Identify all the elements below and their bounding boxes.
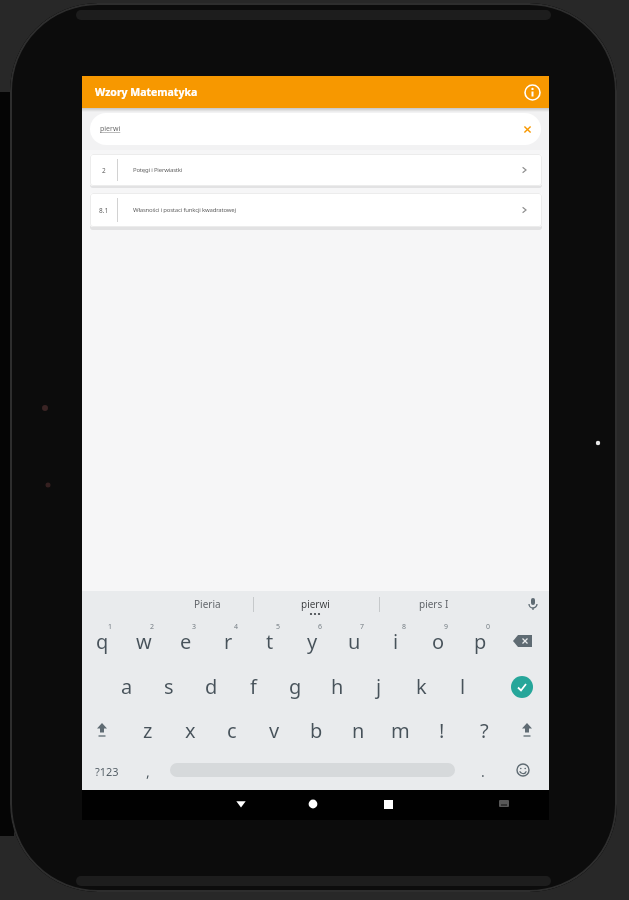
staticText: r xyxy=(224,628,233,655)
staticText: 7 xyxy=(360,622,365,632)
staticText: Wzory Matematyka xyxy=(95,85,198,99)
button[interactable]: u xyxy=(337,625,371,657)
staticText: ?123 xyxy=(95,764,119,779)
button[interactable]: q xyxy=(85,625,119,657)
staticText: piers I xyxy=(419,597,449,611)
button[interactable] xyxy=(516,763,530,777)
staticText: t xyxy=(266,628,274,655)
staticText: s xyxy=(164,673,174,700)
button[interactable]: 2 xyxy=(90,154,542,186)
staticText: , xyxy=(146,762,150,781)
button[interactable]: . xyxy=(466,755,500,787)
button[interactable] xyxy=(511,676,533,698)
staticText: p xyxy=(474,628,487,655)
staticText: ! xyxy=(439,717,445,744)
button[interactable] xyxy=(498,799,510,809)
staticText: a xyxy=(121,673,133,700)
staticText: z xyxy=(143,717,153,744)
staticText: 8 xyxy=(402,622,407,632)
button[interactable]: f xyxy=(236,670,270,702)
staticText: n xyxy=(352,717,365,744)
button[interactable]: r xyxy=(211,625,245,657)
button[interactable]: m xyxy=(383,714,417,746)
button[interactable]: Pieria xyxy=(147,590,267,618)
staticText: l xyxy=(460,673,466,700)
button[interactable]: piers I xyxy=(374,590,494,618)
staticText: 8.1 xyxy=(99,206,109,215)
staticText: g xyxy=(289,673,302,700)
staticText: Pieria xyxy=(194,597,221,611)
button[interactable] xyxy=(526,597,540,611)
staticText: 6 xyxy=(318,622,323,632)
button[interactable]: ?123 xyxy=(47,757,167,785)
staticText: x xyxy=(185,717,196,744)
button[interactable]: t xyxy=(253,625,287,657)
staticText: 3 xyxy=(192,622,197,632)
staticText: ? xyxy=(480,717,489,744)
button[interactable]: j xyxy=(362,670,396,702)
button[interactable] xyxy=(233,796,249,812)
staticText: 2 xyxy=(102,166,106,175)
button[interactable] xyxy=(94,721,110,739)
staticText: 5 xyxy=(276,622,281,632)
staticText: h xyxy=(331,673,344,700)
button[interactable]: y xyxy=(295,625,329,657)
button[interactable]: g xyxy=(278,670,312,702)
button[interactable]: k xyxy=(404,670,438,702)
button[interactable]: w xyxy=(127,625,161,657)
staticText: 0 xyxy=(486,622,491,632)
button[interactable] xyxy=(523,125,532,134)
button[interactable]: e xyxy=(169,625,203,657)
button[interactable]: ? xyxy=(467,714,501,746)
staticText: v xyxy=(269,717,280,744)
staticText: f xyxy=(250,673,257,700)
button[interactable]: v xyxy=(257,714,291,746)
staticText: . xyxy=(481,762,485,781)
staticText: c xyxy=(227,717,237,744)
staticText: pierwi xyxy=(100,124,121,134)
staticText: b xyxy=(310,717,323,744)
staticText: q xyxy=(96,628,109,655)
staticText: i xyxy=(393,628,399,655)
button[interactable] xyxy=(524,84,541,101)
staticText: o xyxy=(432,628,445,655)
button[interactable]: , xyxy=(131,755,165,787)
staticText: k xyxy=(416,673,427,700)
staticText: e xyxy=(180,628,192,655)
staticText: Własności i postaci funkcji kwadratowej xyxy=(133,206,236,214)
staticText: d xyxy=(205,673,218,700)
staticText: 2 xyxy=(150,622,155,632)
staticText: u xyxy=(348,628,361,655)
staticText: pierwi xyxy=(301,597,330,611)
staticText: j xyxy=(376,673,382,700)
button[interactable] xyxy=(305,796,321,812)
button[interactable]: ! xyxy=(425,714,459,746)
button[interactable]: b xyxy=(299,714,333,746)
button[interactable]: h xyxy=(320,670,354,702)
button[interactable]: z xyxy=(131,714,165,746)
staticText: 9 xyxy=(444,622,449,632)
button[interactable]: x xyxy=(173,714,207,746)
button[interactable]: c xyxy=(215,714,249,746)
button[interactable]: n xyxy=(341,714,375,746)
button[interactable] xyxy=(513,634,533,648)
staticText: m xyxy=(391,717,410,744)
button[interactable]: l xyxy=(446,670,480,702)
button[interactable]: pierwi xyxy=(255,590,375,618)
button[interactable]: i xyxy=(379,625,413,657)
staticText: Potęgi i Pierwiastki xyxy=(133,166,183,174)
staticText: 1 xyxy=(108,622,113,632)
button[interactable]: s xyxy=(152,670,186,702)
staticText: w xyxy=(136,628,152,655)
staticText: 4 xyxy=(234,622,239,632)
button[interactable]: o xyxy=(421,625,455,657)
button[interactable]: a xyxy=(110,670,144,702)
button[interactable]: p xyxy=(463,625,497,657)
button[interactable] xyxy=(519,721,535,739)
button[interactable]: 8.1 xyxy=(90,193,542,227)
button[interactable]: d xyxy=(194,670,228,702)
staticText: y xyxy=(307,628,318,655)
